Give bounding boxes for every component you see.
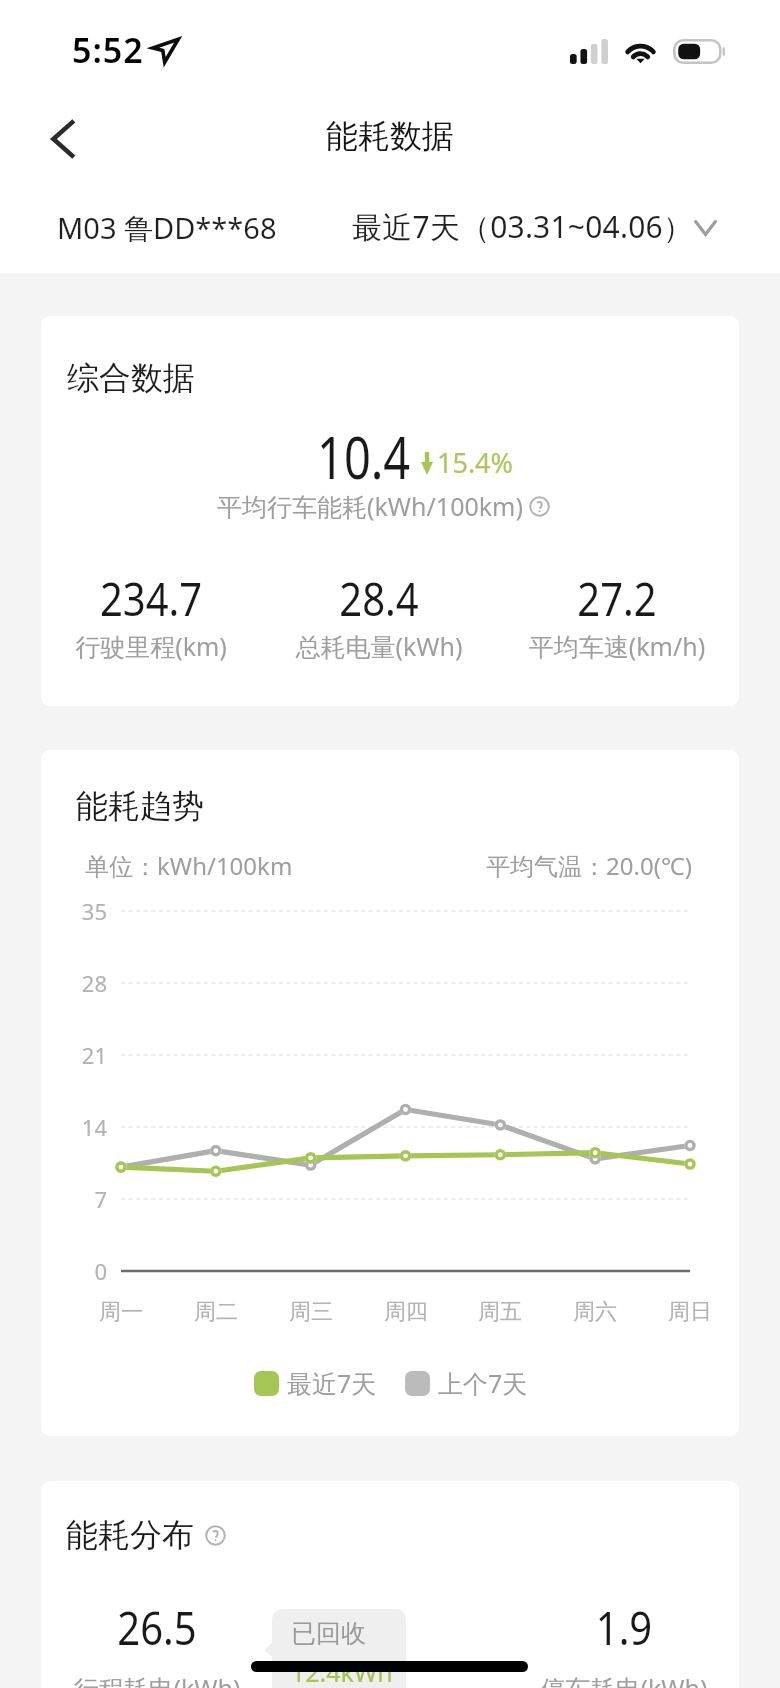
staticText: 周六	[545, 1298, 645, 1326]
staticText: 27.2	[467, 567, 739, 629]
staticText: 平均车速(km/h)	[467, 629, 739, 663]
staticText: 最近7天（03.31~04.06）	[352, 206, 694, 247]
button[interactable]: Back	[28, 108, 86, 166]
staticText: 周五	[450, 1298, 550, 1326]
staticText: 15.4%	[437, 444, 514, 481]
staticText: 周三	[261, 1298, 361, 1326]
staticText: 周四	[356, 1298, 456, 1326]
staticText: 10.4	[317, 417, 411, 496]
staticText: 35	[41, 896, 107, 926]
staticText: 26.5	[41, 1596, 307, 1658]
staticText: 最近7天	[287, 1366, 377, 1400]
staticText: 行程耗电(kWh)	[41, 1671, 307, 1688]
staticText: 12.4kWh	[291, 1655, 393, 1688]
staticText: 周一	[71, 1298, 171, 1326]
staticText: 14	[41, 1112, 107, 1142]
staticText: 上个7天	[438, 1366, 528, 1400]
staticText: 平均气温：20.0(℃)	[41, 849, 692, 882]
staticText: 0	[41, 1256, 107, 1286]
staticText: M03 鲁DD***68	[57, 208, 277, 248]
staticText: 5:52	[72, 27, 144, 73]
staticText: 1.9	[474, 1596, 739, 1658]
staticText: 7	[41, 1184, 107, 1214]
staticText: 综合数据	[67, 358, 195, 398]
button[interactable]: 最近7天（03.31~04.06）	[352, 206, 717, 247]
staticText: 能耗趋势	[76, 786, 204, 826]
staticText: 234.7	[41, 567, 301, 629]
staticText: 单位：kWh/100km	[85, 849, 293, 882]
staticText: 已回收	[291, 1618, 366, 1649]
staticText: 停车耗电(kWh)	[474, 1671, 739, 1688]
staticText: 行驶里程(km)	[41, 629, 301, 663]
staticText: 周二	[166, 1298, 266, 1326]
staticText: 平均行车能耗(kWh/100km)	[217, 489, 523, 523]
staticText: 总耗电量(kWh)	[229, 629, 529, 663]
staticText: 28	[41, 968, 107, 998]
staticText: 能耗数据	[0, 116, 780, 156]
staticText: 21	[41, 1040, 107, 1070]
staticText: 28.4	[229, 567, 529, 629]
staticText: 能耗分布	[66, 1515, 194, 1555]
staticText: 周日	[640, 1298, 739, 1326]
